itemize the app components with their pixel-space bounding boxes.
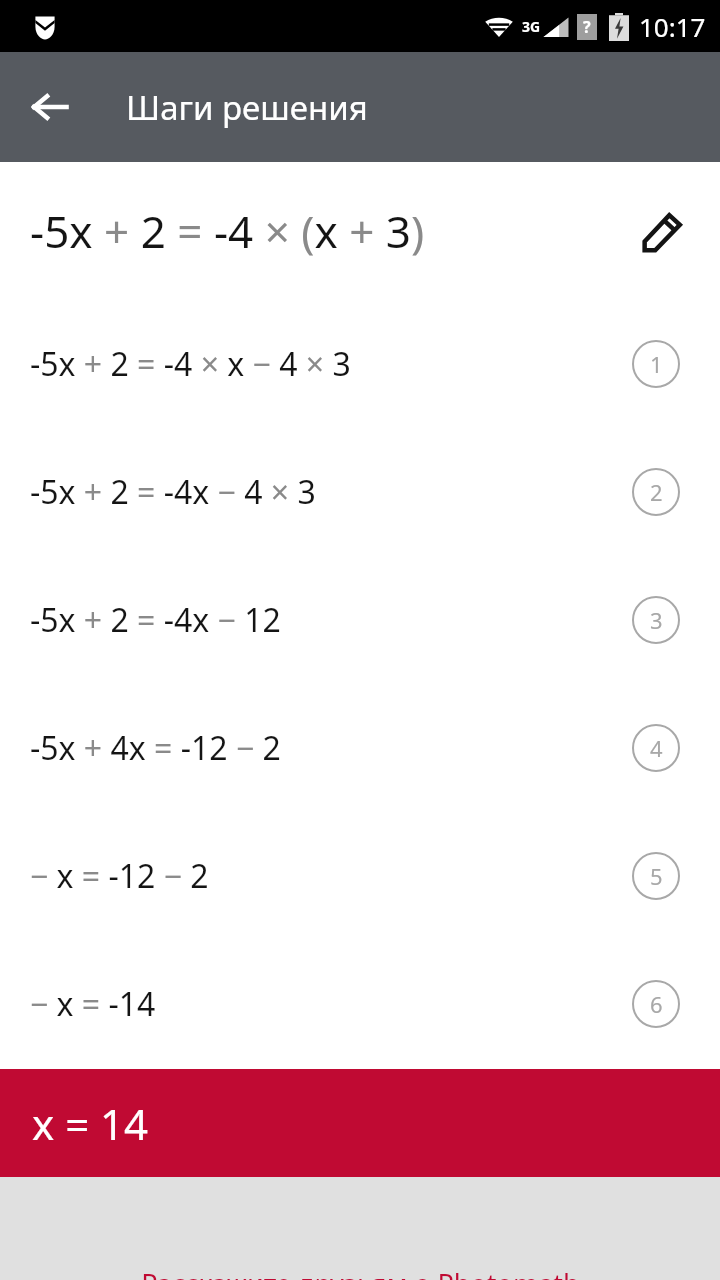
staticText: Расскажите друзьям о Photomath [141, 1265, 580, 1280]
button[interactable]: x = 14 [0, 1069, 720, 1177]
staticText: 5 [650, 861, 663, 891]
staticText: 2 [650, 477, 663, 507]
staticText: x = 14 [32, 1095, 149, 1152]
staticText: 6 [650, 989, 663, 1019]
staticText: 1 [650, 349, 663, 379]
button[interactable]: − x = -12 − 2 [0, 812, 720, 940]
button[interactable]: − x = -14 [0, 940, 720, 1068]
button[interactable]: -5x + 2 = -4x − 4 × 3 [0, 428, 720, 556]
staticText: 3 [650, 605, 663, 635]
staticText: -5x + 2 = -4 × (x + 3) [30, 201, 425, 261]
staticText: -5x + 4x = -12 − 2 [30, 726, 281, 770]
staticText: − x = -12 − 2 [30, 854, 209, 898]
staticText: -5x + 2 = -4x − 12 [30, 598, 281, 642]
staticText: ? [583, 16, 591, 38]
staticText: − x = -14 [30, 982, 156, 1026]
button[interactable]: -5x + 2 = -4x − 12 [0, 556, 720, 684]
staticText: -5x + 2 = -4 × x − 4 × 3 [30, 342, 351, 386]
button[interactable]: -5x + 2 = -4 × x − 4 × 3 [0, 300, 720, 428]
staticText: 3G [522, 17, 541, 36]
staticText: -5x + 2 = -4x − 4 × 3 [30, 470, 316, 514]
staticText: Шаги решения [126, 85, 368, 130]
staticText: 4 [650, 733, 663, 763]
button[interactable]: Edit [636, 203, 692, 259]
button[interactable]: Back [22, 79, 78, 135]
staticText: 10:17 [639, 9, 706, 44]
button[interactable]: -5x + 4x = -12 − 2 [0, 684, 720, 812]
